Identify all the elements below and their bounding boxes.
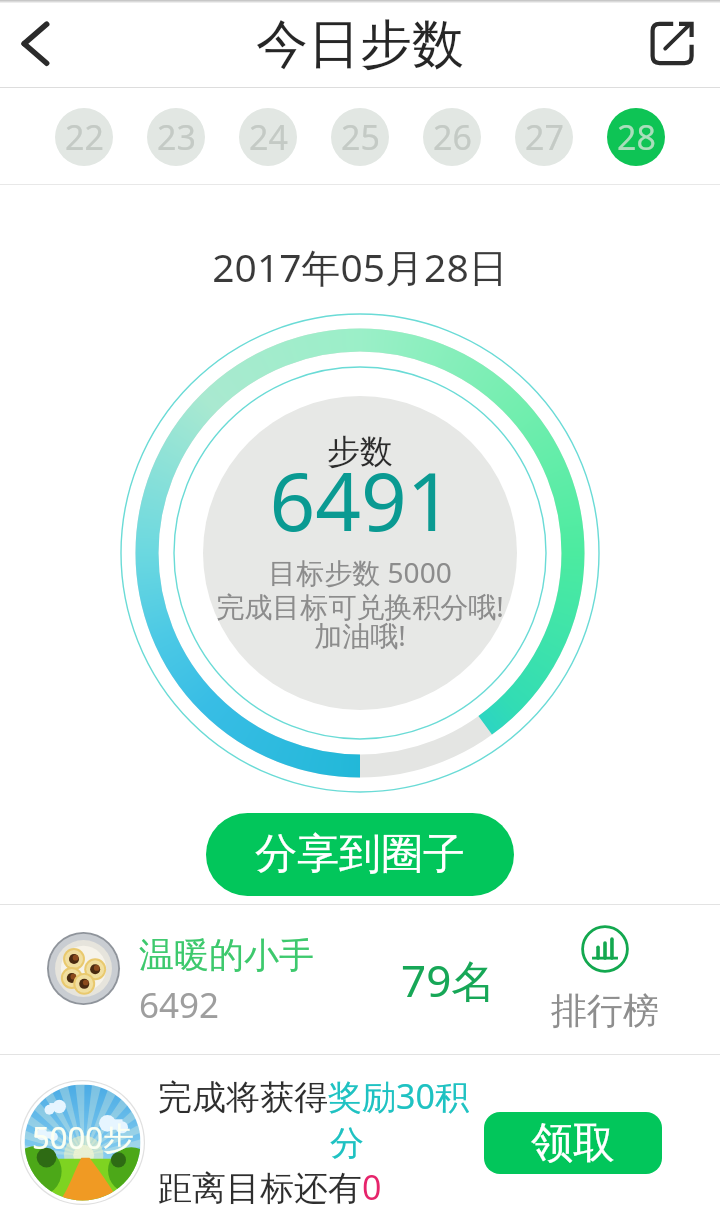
button[interactable]: Back	[0, 0, 80, 88]
staticText: 步数	[0, 431, 720, 473]
staticText: 温暖的小手	[139, 933, 314, 977]
staticText: 79名	[401, 950, 496, 1010]
staticText: 23	[157, 114, 196, 160]
staticText: 6492	[139, 981, 220, 1029]
staticText: 距离目标还有0	[158, 1164, 382, 1210]
staticText: 加油哦!	[0, 616, 720, 654]
staticText: 5000步	[32, 1116, 134, 1158]
button[interactable]: 24	[239, 108, 297, 166]
staticText: 排行榜	[551, 988, 659, 1033]
button[interactable]: 25	[331, 108, 389, 166]
button[interactable]: 22	[55, 108, 113, 166]
button[interactable]: 28	[607, 108, 665, 166]
staticText: 完成目标可兑换积分哦!	[0, 587, 720, 625]
button[interactable]: Share	[628, 0, 720, 88]
staticText: 分	[330, 1122, 364, 1165]
button[interactable]: 5000 步奖章	[20, 1080, 145, 1205]
staticText: 27	[525, 114, 564, 160]
staticText: 22	[65, 114, 104, 160]
staticText: 完成将获得奖励30积	[158, 1073, 469, 1119]
staticText: 6491	[1, 445, 720, 554]
button[interactable]: 27	[515, 108, 573, 166]
button[interactable]: 领取	[484, 1112, 662, 1174]
button[interactable]: 23	[147, 108, 205, 166]
staticText: 24	[249, 114, 288, 160]
staticText: 26	[433, 114, 472, 160]
staticText: 今日步数	[256, 12, 464, 78]
staticText: 目标步数 5000	[0, 553, 720, 591]
button[interactable]: 排行榜	[544, 925, 666, 1033]
staticText: 领取	[531, 1117, 615, 1170]
staticText: 2017年05月28日	[0, 240, 720, 293]
button[interactable]: 温暖的小手	[0, 905, 720, 1054]
staticText: 25	[341, 114, 380, 160]
button[interactable]: 分享到圈子	[206, 813, 514, 896]
staticText: 分享到圈子	[255, 828, 465, 881]
button[interactable]: 26	[423, 108, 481, 166]
staticText: 28	[617, 114, 656, 160]
